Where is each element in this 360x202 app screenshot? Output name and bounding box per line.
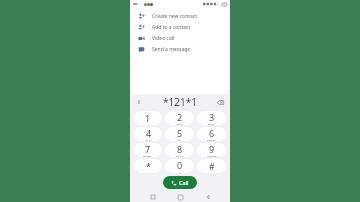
button[interactable]: 1 bbox=[134, 111, 162, 125]
staticText: 7 bbox=[145, 143, 151, 155]
button[interactable]: Send a message bbox=[130, 44, 230, 55]
button[interactable]: Recents bbox=[148, 192, 158, 202]
button[interactable]: 7 bbox=[134, 143, 162, 157]
staticText: *121*1 bbox=[163, 95, 197, 109]
staticText: 0 bbox=[177, 159, 183, 171]
button[interactable]: 4 bbox=[134, 127, 162, 141]
staticText: 5 bbox=[177, 127, 183, 139]
staticText: TUV bbox=[176, 155, 183, 157]
button[interactable]: * bbox=[134, 159, 162, 173]
button[interactable]: Add to a contact bbox=[130, 22, 230, 33]
button[interactable]: Video call bbox=[130, 33, 230, 44]
button[interactable]: 8 bbox=[165, 143, 194, 157]
staticText: Video call bbox=[152, 35, 175, 42]
button[interactable]: 6 bbox=[197, 127, 226, 141]
button[interactable]: Call bbox=[163, 176, 197, 189]
staticText: PQRS bbox=[143, 155, 153, 157]
staticText: 2 bbox=[177, 111, 183, 123]
staticText: 8 bbox=[177, 143, 183, 155]
staticText: Send a message bbox=[152, 46, 191, 53]
button[interactable]: 2 bbox=[165, 111, 194, 125]
staticText: 6 bbox=[209, 127, 215, 139]
staticText: 9 bbox=[209, 143, 215, 155]
button[interactable]: 3 bbox=[197, 111, 226, 125]
button[interactable]: 5 bbox=[165, 127, 194, 141]
staticText: # bbox=[209, 160, 215, 172]
staticText: WXYZ bbox=[207, 155, 217, 157]
staticText: Create new contact bbox=[152, 13, 198, 20]
button[interactable]: More options bbox=[135, 98, 143, 106]
staticText: Call bbox=[179, 179, 189, 186]
button[interactable]: Back bbox=[203, 192, 213, 202]
staticText: ABC bbox=[176, 123, 183, 125]
staticText: GHI bbox=[145, 139, 152, 141]
button[interactable]: # bbox=[197, 159, 226, 173]
staticText: 1 bbox=[145, 112, 151, 124]
staticText: JKL bbox=[177, 139, 183, 141]
button[interactable]: Backspace bbox=[216, 98, 225, 107]
staticText: 3 bbox=[209, 111, 215, 123]
button[interactable]: Create new contact bbox=[130, 11, 230, 22]
staticText: * bbox=[146, 160, 151, 172]
staticText: MNO bbox=[207, 139, 216, 141]
staticText: 4 bbox=[146, 127, 152, 139]
button[interactable]: Home bbox=[175, 192, 185, 202]
staticText: Add to a contact bbox=[152, 24, 191, 31]
button[interactable]: 0 bbox=[165, 159, 194, 173]
button[interactable]: 9 bbox=[197, 143, 226, 157]
staticText: DEF bbox=[208, 123, 215, 125]
